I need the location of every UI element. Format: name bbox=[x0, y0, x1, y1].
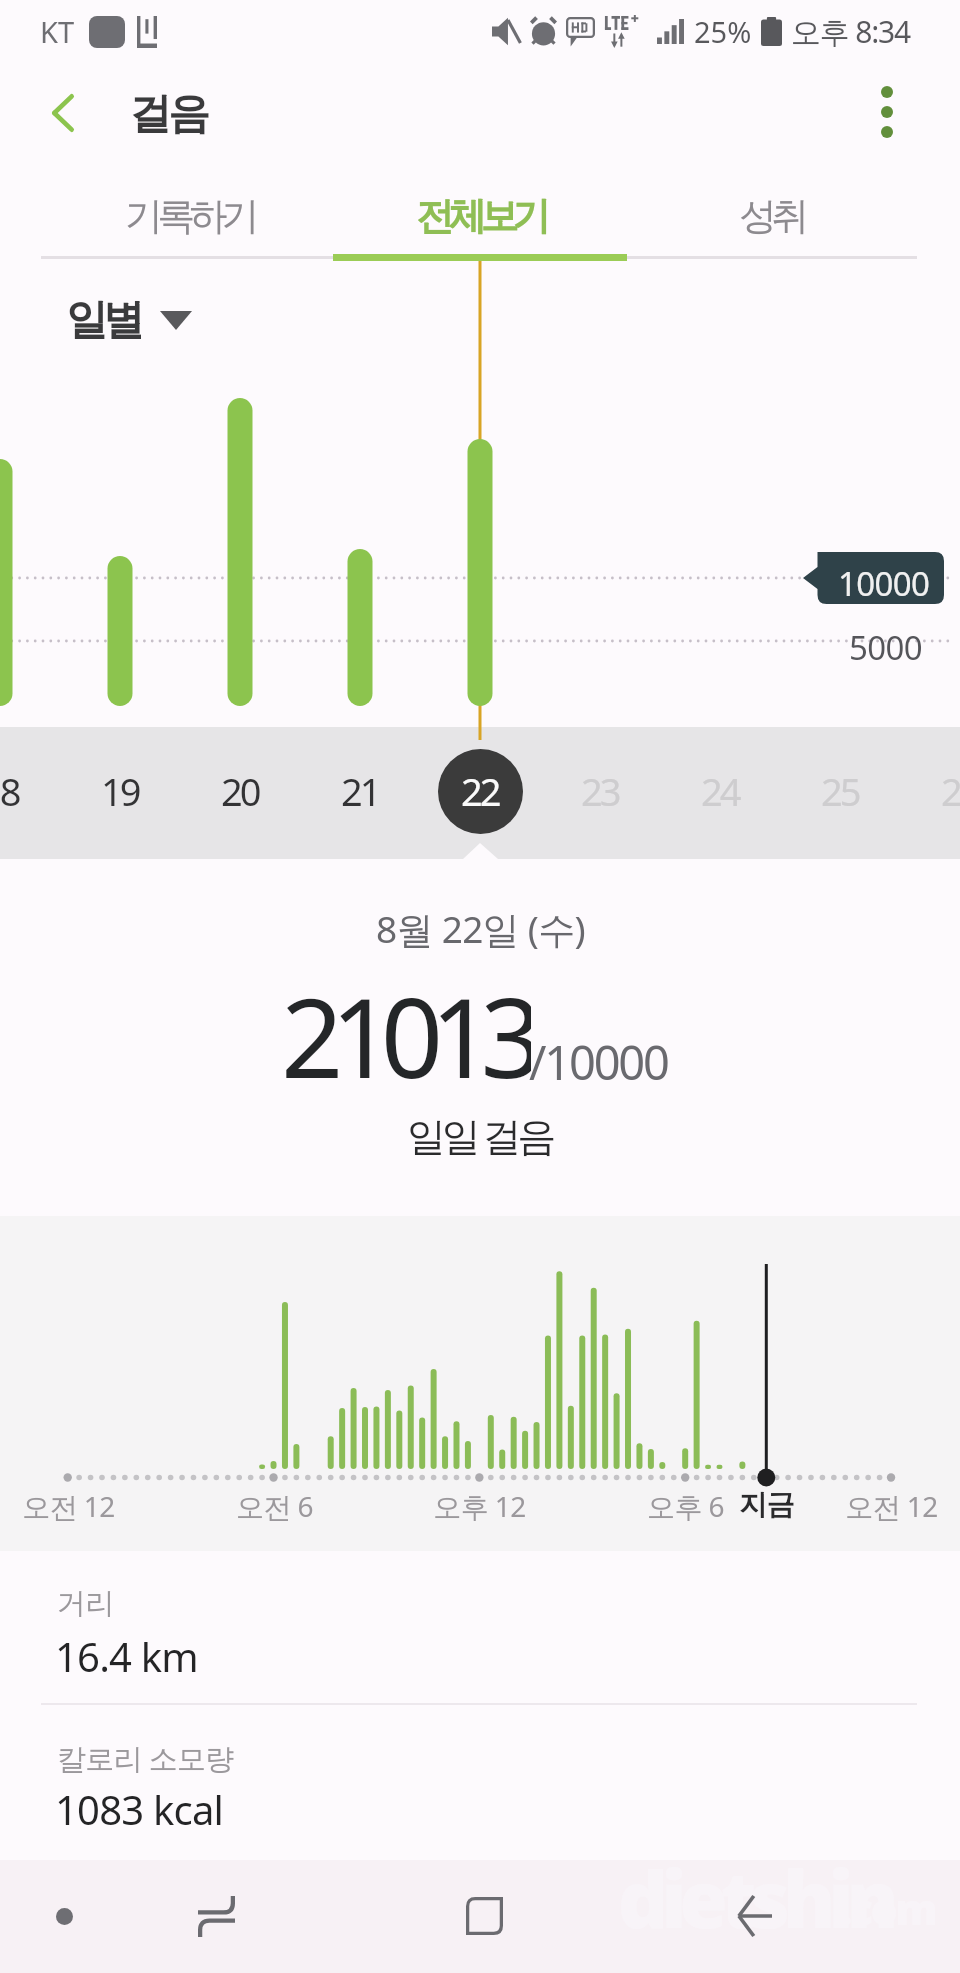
button[interactable]: More options bbox=[845, 70, 929, 154]
staticText: 5000 bbox=[849, 625, 923, 670]
button[interactable]: Home bbox=[424, 1859, 544, 1972]
button[interactable]: 전체보기 bbox=[320, 170, 640, 262]
button[interactable]: 일별 bbox=[66, 294, 192, 347]
staticText: 18 bbox=[0, 765, 19, 817]
staticText: 오후 6 bbox=[647, 1487, 724, 1525]
button[interactable]: 25 bbox=[780, 747, 900, 835]
staticText: 오후 12 bbox=[433, 1487, 526, 1525]
button[interactable]: Back bbox=[21, 71, 105, 155]
staticText: 기록하기 bbox=[125, 192, 254, 240]
staticText: 일일 걸음 bbox=[407, 1108, 553, 1161]
button[interactable]: 21 bbox=[300, 747, 420, 835]
staticText: 20 bbox=[221, 765, 259, 817]
staticText: 오전 12 bbox=[845, 1487, 938, 1525]
staticText: 21 bbox=[341, 765, 379, 817]
staticText: 21013 bbox=[281, 961, 531, 1101]
staticText: KT bbox=[40, 12, 75, 51]
staticText: 22 bbox=[461, 765, 499, 817]
staticText: /10000 bbox=[529, 1030, 668, 1094]
staticText: 전체보기 bbox=[416, 192, 545, 240]
button[interactable]: 20 bbox=[180, 747, 300, 835]
button[interactable]: 24 bbox=[660, 747, 780, 835]
button[interactable]: 18 bbox=[0, 747, 60, 835]
button[interactable]: 19 bbox=[60, 747, 180, 835]
staticText: 16.4 km bbox=[55, 1629, 198, 1683]
button[interactable]: 칼로리 소모량 bbox=[0, 1704, 960, 1857]
staticText: 오후 8:34 bbox=[791, 11, 910, 52]
button[interactable]: Hide keyboard bbox=[24, 1860, 104, 1973]
button[interactable]: 22 bbox=[420, 747, 540, 835]
staticText: 성취 bbox=[739, 192, 804, 240]
staticText: 오전 12 bbox=[22, 1487, 115, 1525]
staticText: 24 bbox=[701, 765, 739, 817]
staticText: 25% bbox=[694, 12, 752, 51]
button[interactable]: Back bbox=[694, 1859, 814, 1972]
button[interactable]: 기록하기 bbox=[29, 170, 349, 262]
staticText: 8월 22일 (수) bbox=[376, 903, 585, 954]
staticText: dietshin bbox=[618, 1845, 892, 1951]
button[interactable]: 26 bbox=[900, 747, 960, 835]
button[interactable]: 거리 bbox=[0, 1551, 960, 1704]
staticText: 19 bbox=[101, 765, 139, 817]
staticText: 지금 bbox=[739, 1487, 794, 1522]
button[interactable]: 성취 bbox=[611, 170, 931, 262]
staticText: 26 bbox=[941, 765, 960, 817]
button[interactable]: Recents bbox=[156, 1860, 276, 1973]
staticText: 오전 6 bbox=[236, 1487, 313, 1525]
staticText: 일별 bbox=[66, 294, 140, 347]
staticText: 23 bbox=[581, 765, 619, 817]
staticText: 25 bbox=[821, 765, 859, 817]
staticText: 칼로리 소모량 bbox=[57, 1738, 234, 1778]
staticText: 10000 bbox=[838, 561, 930, 606]
staticText: 1083 kcal bbox=[55, 1782, 224, 1836]
staticText: 거리 bbox=[57, 1585, 114, 1622]
button[interactable]: 23 bbox=[540, 747, 660, 835]
staticText: 걸음 bbox=[129, 88, 208, 141]
